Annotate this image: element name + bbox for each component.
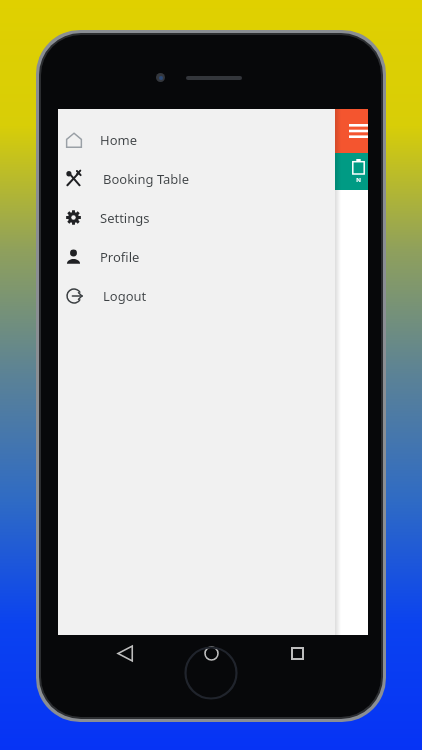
button[interactable]: Home button (184, 646, 238, 700)
staticText: Booking Table (103, 170, 190, 188)
button[interactable]: Back (82, 635, 168, 671)
button[interactable]: Logout (58, 276, 335, 315)
staticText: Profile (100, 248, 140, 266)
staticText: Settings (100, 209, 150, 227)
button[interactable]: Recent apps (254, 635, 340, 671)
button[interactable]: Home (58, 120, 335, 159)
staticText: Home (100, 131, 137, 149)
button[interactable]: Open navigation menu (340, 113, 376, 149)
button[interactable]: Profile (58, 237, 335, 276)
staticText: N (356, 176, 361, 184)
button[interactable]: Settings (58, 198, 335, 237)
staticText: Logout (103, 287, 147, 305)
button[interactable]: Home (168, 635, 254, 671)
button[interactable]: Booking Table (58, 159, 335, 198)
